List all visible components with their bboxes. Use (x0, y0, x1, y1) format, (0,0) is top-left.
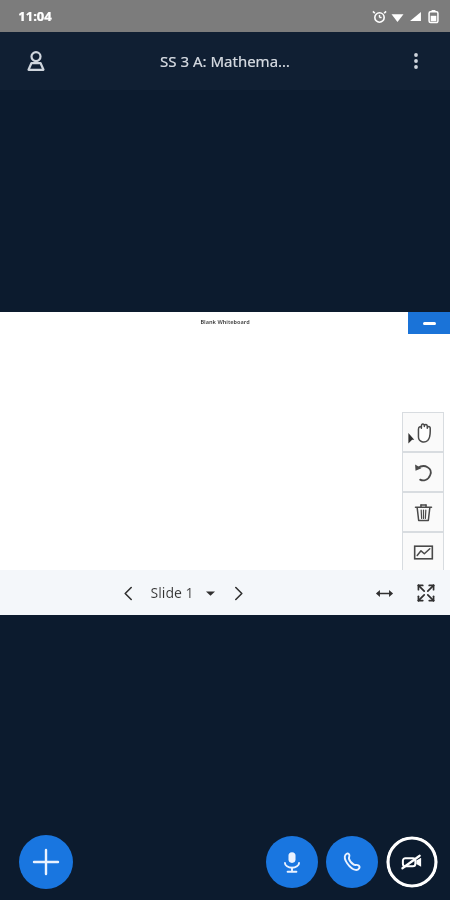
button[interactable]: Choose slide (199, 582, 221, 604)
button[interactable]: Turn on camera (386, 836, 438, 888)
button[interactable]: Add (19, 835, 73, 889)
button[interactable]: Mute microphone (266, 836, 318, 888)
button[interactable]: Fullscreen (408, 575, 444, 611)
staticText: 11:04 (18, 7, 52, 25)
staticText: Blank Whiteboard (200, 318, 250, 325)
button[interactable]: End call (326, 836, 378, 888)
button[interactable]: Delete (402, 492, 444, 532)
button[interactable]: Fit width (366, 575, 402, 611)
button[interactable]: Next slide (221, 576, 255, 610)
button[interactable]: Slide 1 (150, 583, 194, 602)
button[interactable]: Participants (14, 39, 58, 83)
button[interactable]: Insert chart (402, 532, 444, 572)
button[interactable]: Pan tool (402, 412, 444, 452)
button[interactable]: Previous slide (111, 576, 145, 610)
button[interactable]: Minimize (408, 312, 450, 334)
button[interactable]: Undo (402, 452, 444, 492)
button[interactable]: More options (394, 39, 438, 83)
staticText: SS 3 A: Mathema… (160, 51, 290, 71)
